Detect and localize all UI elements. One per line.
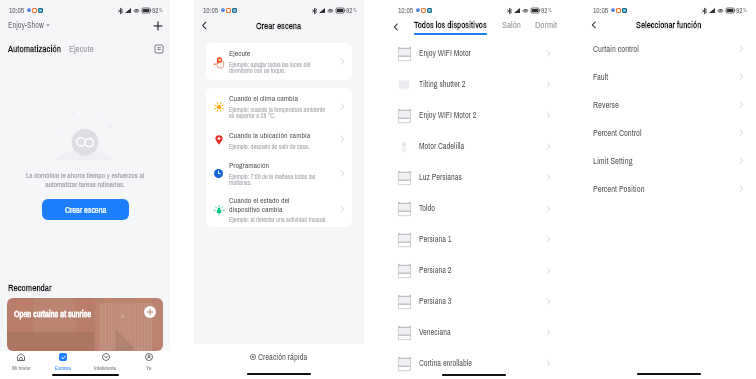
- button[interactable]: Escena: [42, 351, 84, 370]
- staticText: Programación: [229, 160, 319, 171]
- staticText: %: [353, 7, 357, 14]
- staticText: 92: [541, 6, 548, 15]
- staticText: %: [159, 7, 163, 14]
- staticText: Ejemplo: apagar todas las luces del dorm…: [229, 60, 328, 75]
- button[interactable]: Limit Setting: [584, 146, 754, 174]
- staticText: Crear escena: [65, 204, 107, 215]
- button[interactable]: Dormit: [535, 19, 558, 31]
- staticText: Toldo: [419, 203, 544, 214]
- staticText: Persiana 2: [419, 265, 544, 276]
- staticText: Ejecute: [69, 43, 94, 55]
- button[interactable]: Programación: [206, 155, 352, 191]
- button[interactable]: Cuando el estado del dispositivo cambia: [206, 191, 352, 227]
- button[interactable]: Motor Cadelilla: [389, 131, 559, 162]
- staticText: Ejemplo: al detectar una actividad inusu…: [229, 215, 328, 223]
- staticText: 10:05: [398, 5, 414, 15]
- staticText: Reverse: [593, 99, 737, 110]
- staticText: Open curtains at sunrise: [14, 308, 92, 320]
- button[interactable]: Open curtains at sunrise: [7, 298, 163, 351]
- button[interactable]: Crear escena: [42, 199, 129, 220]
- button[interactable]: Curtain control: [584, 34, 754, 62]
- button[interactable]: Mi hogar: [0, 351, 42, 370]
- staticText: 92: [736, 6, 743, 15]
- button[interactable]: Add: [151, 19, 165, 32]
- button[interactable]: Inteligente: [84, 351, 127, 370]
- staticText: Fault: [593, 71, 737, 82]
- staticText: Todos los dispositivos: [414, 19, 487, 31]
- staticText: Automatización: [8, 42, 61, 55]
- button[interactable]: Back: [587, 19, 600, 30]
- button[interactable]: Todos los dispositivos: [414, 19, 487, 35]
- button[interactable]: Percent Position: [584, 174, 754, 202]
- button[interactable]: Persiana 3: [389, 286, 559, 317]
- button[interactable]: Enjoy-Show: [8, 20, 50, 31]
- button[interactable]: Salón: [502, 19, 521, 31]
- button[interactable]: Add recommended scene: [144, 306, 156, 318]
- button[interactable]: Toldo: [389, 193, 559, 224]
- staticText: Crear escena: [256, 19, 302, 31]
- button[interactable]: Yo: [127, 351, 170, 370]
- staticText: Persiana 1: [419, 234, 544, 245]
- staticText: 10:05: [203, 5, 219, 15]
- button[interactable]: Manage list: [152, 42, 165, 55]
- staticText: La domótica le ahorra tiempo y esfuerzos…: [21, 170, 149, 189]
- staticText: Cuando el estado del dispositivo cambia: [229, 195, 319, 214]
- button[interactable]: Percent Control: [584, 118, 754, 146]
- button[interactable]: Cuando la ubicación cambia: [206, 124, 352, 155]
- staticText: Veneciana: [419, 327, 544, 338]
- staticText: Limit Setting: [593, 155, 737, 166]
- staticText: Cortina enrollable: [419, 358, 544, 369]
- button[interactable]: Enjoy WIFI Motor: [389, 38, 559, 69]
- button[interactable]: Cuando el clima cambia: [206, 88, 352, 124]
- button[interactable]: Back: [198, 19, 211, 31]
- staticText: %: [548, 7, 552, 14]
- staticText: 92: [346, 6, 353, 15]
- button[interactable]: Tilting shutter 2: [389, 69, 559, 100]
- staticText: Luz Persianas: [419, 172, 544, 183]
- staticText: Enjoy WIFI Motor: [419, 48, 544, 59]
- staticText: Cuando la ubicación cambia: [229, 130, 319, 141]
- staticText: Mi hogar: [12, 364, 31, 370]
- staticText: Recomendar: [8, 281, 52, 294]
- staticText: Salón: [502, 19, 521, 31]
- staticText: Ejemplo: cuando la temperatura ambiente …: [229, 105, 328, 120]
- staticText: Cuando el clima cambia: [229, 93, 319, 104]
- button[interactable]: Back: [389, 20, 402, 33]
- staticText: Ejecute: [229, 48, 319, 59]
- staticText: Yo: [146, 364, 152, 370]
- button[interactable]: Automatización: [8, 42, 61, 55]
- staticText: Enjoy-Show: [8, 20, 44, 31]
- button[interactable]: Luz Persianas: [389, 162, 559, 193]
- staticText: 10:05: [9, 5, 25, 15]
- button[interactable]: Cortina enrollable: [389, 348, 559, 379]
- button[interactable]: Reverse: [584, 90, 754, 118]
- button[interactable]: Persiana 2: [389, 255, 559, 286]
- button[interactable]: Fault: [584, 62, 754, 90]
- button[interactable]: Creación rápida: [194, 344, 364, 369]
- staticText: Ejemplo: después de salir de casa.: [229, 142, 328, 150]
- staticText: %: [743, 7, 747, 14]
- staticText: Dormit: [535, 19, 558, 31]
- staticText: Escena: [55, 364, 71, 370]
- button[interactable]: Ejecute: [69, 43, 94, 55]
- staticText: Tilting shutter 2: [419, 79, 544, 90]
- staticText: Percent Control: [593, 127, 737, 138]
- staticText: Persiana 3: [419, 296, 544, 307]
- staticText: 92: [152, 6, 159, 15]
- staticText: Seleccionar función: [636, 19, 702, 30]
- button[interactable]: Ejecute: [206, 43, 352, 80]
- staticText: Curtain control: [593, 43, 737, 54]
- button[interactable]: Persiana 1: [389, 224, 559, 255]
- staticText: Creación rápida: [258, 351, 308, 362]
- button[interactable]: Veneciana: [389, 317, 559, 348]
- staticText: Inteligente: [94, 364, 117, 370]
- staticText: Enjoy WIFI Motor 2: [419, 110, 544, 121]
- staticText: 10:05: [593, 5, 609, 15]
- staticText: Percent Position: [593, 183, 737, 194]
- button[interactable]: Enjoy WIFI Motor 2: [389, 100, 559, 131]
- staticText: Motor Cadelilla: [419, 141, 544, 152]
- staticText: Ejemplo: 7:00 de la mañana todas las mañ…: [229, 172, 328, 187]
